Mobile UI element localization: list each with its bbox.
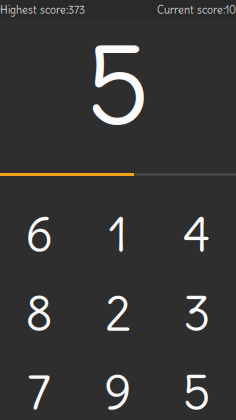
staticText: 3 <box>183 283 210 344</box>
staticText: 4 <box>183 204 211 265</box>
button[interactable]: 2 <box>79 274 157 353</box>
button[interactable]: 1 <box>79 195 157 274</box>
button[interactable]: 9 <box>79 353 157 420</box>
staticText: 6 <box>25 204 53 265</box>
staticText: 5 <box>86 14 150 153</box>
button[interactable]: 7 <box>0 353 79 420</box>
staticText: 1 <box>108 204 127 265</box>
button[interactable]: 3 <box>157 274 236 353</box>
button[interactable]: 8 <box>0 274 79 353</box>
button[interactable]: 4 <box>157 195 236 274</box>
button[interactable]: 5 <box>157 353 236 420</box>
staticText: 8 <box>25 283 53 344</box>
staticText: 9 <box>104 362 132 420</box>
staticText: 2 <box>105 283 131 344</box>
staticText: Highest score:373 <box>0 3 85 17</box>
button[interactable]: 6 <box>0 195 79 274</box>
staticText: 5 <box>183 362 211 420</box>
staticText: 7 <box>27 362 51 420</box>
staticText: Current score:10 <box>157 3 236 17</box>
